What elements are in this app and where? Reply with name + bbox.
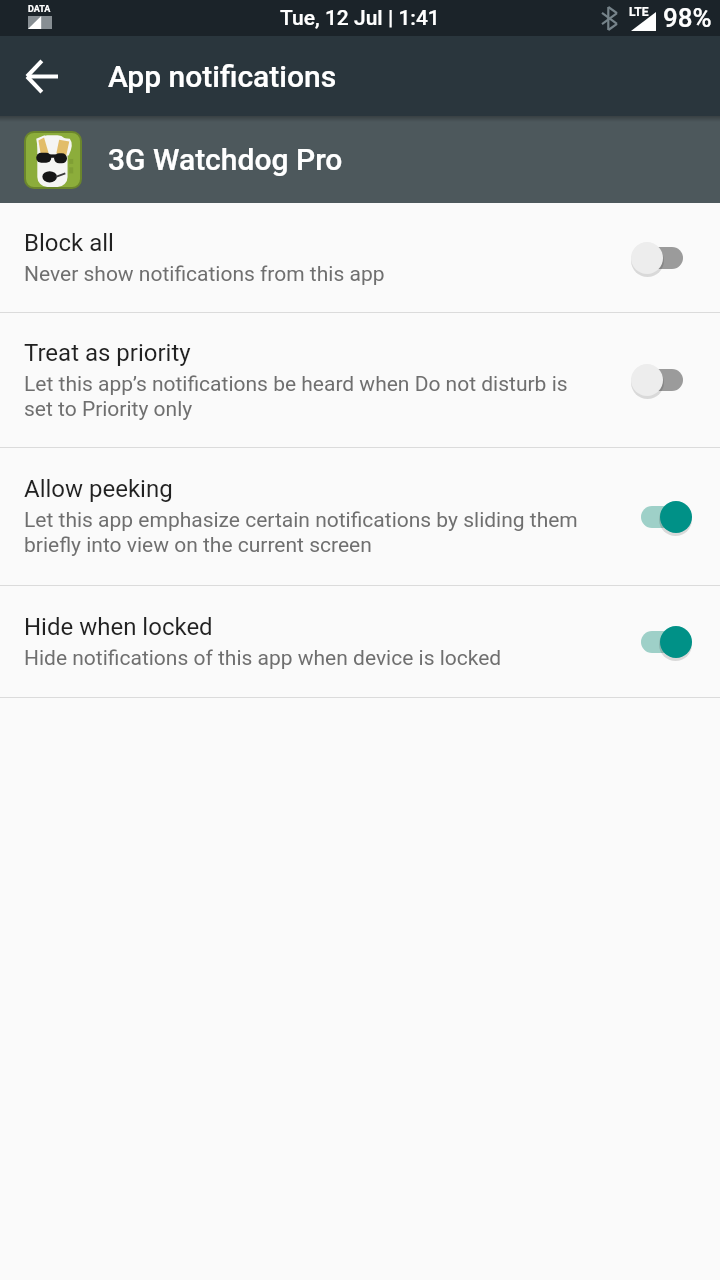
button[interactable] [631,499,692,535]
button[interactable] [631,624,692,660]
button[interactable]: Hide when locked [0,586,720,697]
staticText: 3G Watchdog Pro [108,142,343,177]
button[interactable] [18,52,66,100]
staticText: LTE [629,5,649,19]
button[interactable]: 3G Watchdog Pro [0,116,720,203]
button[interactable]: Block all [0,203,720,312]
staticText: Hide when locked [24,613,213,641]
staticText: 98% [663,3,712,33]
staticText: Treat as priority [24,339,191,367]
staticText: Allow peeking [24,475,173,503]
staticText: Let this app emphasize certain notificat… [24,508,578,533]
staticText: Hide notifications of this app when devi… [24,646,502,671]
button[interactable]: Treat as priority [0,313,720,447]
staticText: Let this app’s notifications be heard wh… [24,372,568,397]
staticText: briefly into view on the current screen [24,533,372,558]
staticText: Block all [24,229,114,257]
staticText: Tue, 12 Jul | 1:41 [280,6,440,31]
staticText: set to Priority only [24,397,193,422]
button[interactable]: Allow peeking [0,448,720,585]
staticText: App notifications [108,59,337,94]
button[interactable] [631,240,692,276]
staticText: Never show notifications from this app [24,262,385,287]
staticText: DATA [28,4,51,15]
button[interactable] [631,362,692,398]
